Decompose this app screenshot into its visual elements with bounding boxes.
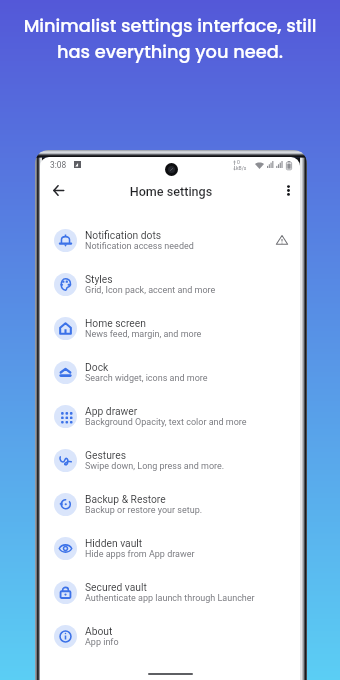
button[interactable]: Back [46,178,70,202]
staticText: Gestures [85,449,127,461]
staticText: Swipe down, Long press and more. [85,461,225,472]
staticText: Backup or restore your setup. [85,505,203,516]
staticText: App drawer [85,405,138,417]
staticText: Backup & Restore [85,493,166,505]
staticText: Home settings [41,184,300,199]
staticText: App info [85,637,119,648]
staticText: Dock [85,361,109,373]
button[interactable]: Secured vault [40,570,300,614]
staticText: Background Opacity, text color and more [85,417,247,428]
staticText: Notification access needed [85,241,194,252]
button[interactable]: Gestures [40,438,300,482]
button[interactable]: Backup & Restore [40,482,300,526]
button[interactable]: Notification dots [40,218,300,262]
button[interactable]: More options [276,178,300,202]
staticText: kB/s [236,165,247,171]
staticText: 0 [237,159,240,165]
button[interactable]: Hidden vault [40,526,300,570]
button[interactable]: About [40,614,300,658]
staticText: Grid, Icon pack, accent and more [85,285,216,296]
button[interactable]: Home screen [40,306,300,350]
staticText: News feed, margin, and more [85,329,202,340]
button[interactable]: Dock [40,350,300,394]
staticText: Minimalist settings interface, still has… [0,13,340,64]
staticText: About [85,625,113,637]
staticText: Notification dots [85,229,162,241]
button[interactable]: Styles [40,262,300,306]
staticText: 3:08 [50,160,67,170]
staticText: Secured vault [85,581,147,593]
staticText: Styles [85,273,113,285]
staticText: Authenticate app launch through Launcher [85,593,255,604]
staticText: Hidden vault [85,537,143,549]
button[interactable]: App drawer [40,394,300,438]
staticText: Hide apps from App drawer [85,549,195,560]
staticText: Home screen [85,317,146,329]
staticText: Search widget, icons and more [85,373,208,384]
